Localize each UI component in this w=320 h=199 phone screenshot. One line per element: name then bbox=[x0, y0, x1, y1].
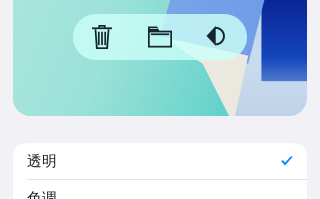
button[interactable]: 透明 bbox=[13, 143, 307, 180]
button[interactable]: Undo bbox=[189, 14, 247, 60]
staticText: 色调 bbox=[27, 189, 57, 199]
staticText: 透明 bbox=[27, 152, 57, 170]
button[interactable]: Folder bbox=[131, 14, 189, 60]
button[interactable]: Delete bbox=[73, 14, 131, 60]
button[interactable]: 色调 bbox=[13, 180, 307, 199]
